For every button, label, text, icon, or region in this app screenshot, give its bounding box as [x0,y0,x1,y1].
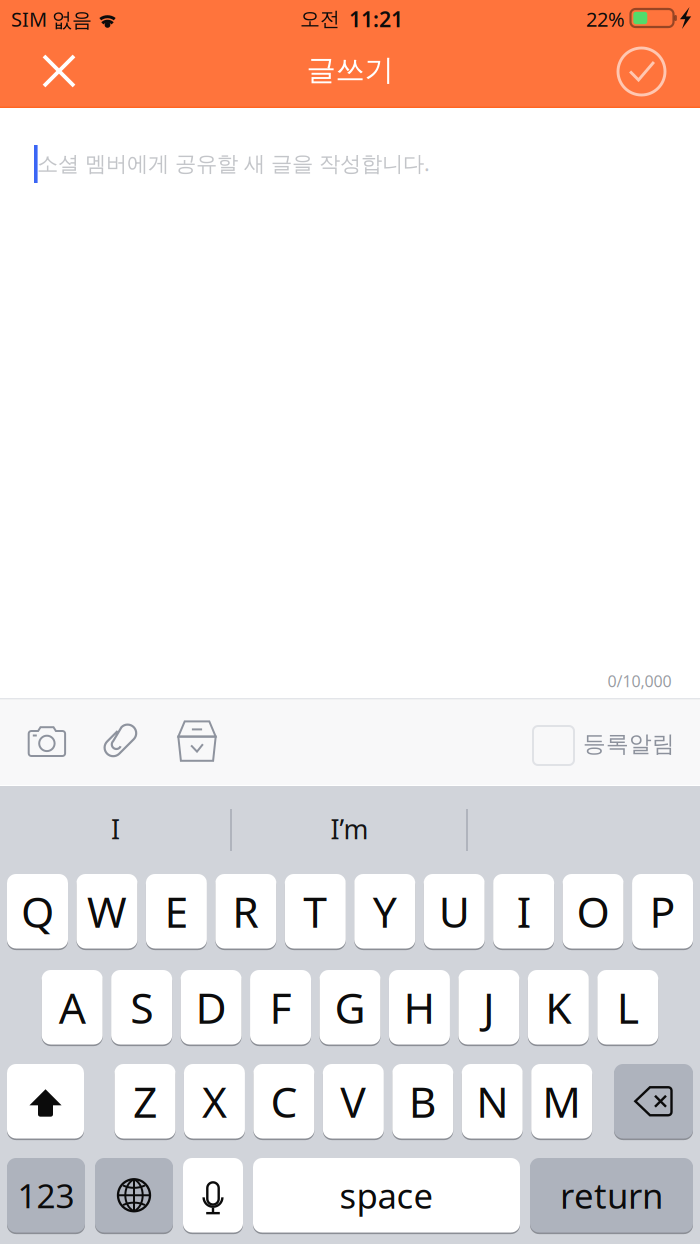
button[interactable]: L [597,970,658,1046]
button[interactable]: 123 [7,1158,85,1234]
staticText: X [202,1073,227,1130]
staticText: K [545,979,571,1036]
button[interactable]: M [531,1064,592,1140]
button[interactable]: U [424,874,485,950]
staticText: 글쓰기 [306,52,393,88]
button[interactable]: I [0,808,231,850]
button[interactable]: Archive [163,710,231,772]
button[interactable]: A [42,970,103,1046]
button[interactable]: I’m [232,808,467,850]
button[interactable]: I [493,874,554,950]
button[interactable]: X [184,1064,245,1140]
staticText: E [164,883,188,940]
button[interactable]: E [146,874,207,950]
button[interactable]: B [392,1064,453,1140]
staticText: O [577,883,610,940]
staticText: 123 [17,1173,74,1217]
staticText: SIM 없음 [11,6,92,32]
staticText: F [270,979,292,1036]
staticText: W [87,883,127,940]
staticText: V [340,1073,366,1130]
staticText: 11:21 [349,5,403,33]
button[interactable]: Camera [13,713,82,771]
button[interactable]: Shift [7,1064,84,1140]
staticText: M [542,1073,581,1130]
button[interactable]: Attach file [86,711,154,771]
staticText: I’m [330,811,368,847]
button[interactable]: Dictate [183,1158,243,1234]
staticText: I [517,883,531,940]
staticText: space [339,1172,433,1218]
staticText: I [111,811,120,847]
button[interactable]: S [111,970,172,1046]
staticText: C [270,1073,297,1130]
button[interactable]: C [253,1064,314,1140]
staticText: 0/10,000 [607,670,671,692]
staticText: N [476,1073,508,1130]
staticText: U [439,883,470,940]
staticText: H [403,979,435,1036]
staticText: 소셜 멤버에게 공유할 새 글을 작성합니다. [37,149,430,177]
button[interactable]: V [323,1064,384,1140]
staticText: Z [133,1073,157,1130]
button[interactable]: return [530,1158,693,1234]
button[interactable]: K [528,970,589,1046]
staticText: S [130,979,153,1036]
staticText: R [232,883,259,940]
staticText: G [334,979,365,1036]
button[interactable]: G [319,970,380,1046]
button[interactable]: Z [114,1064,175,1140]
staticText: 22% [586,6,625,32]
staticText: A [59,979,86,1036]
button[interactable]: space [253,1158,520,1234]
staticText: 오전 [300,7,346,31]
button[interactable]: J [458,970,519,1046]
button[interactable]: N [462,1064,523,1140]
button[interactable]: Close [10,40,110,102]
staticText: P [650,883,676,940]
staticText: D [196,979,227,1036]
staticText: return [560,1172,663,1218]
staticText: J [483,979,495,1036]
button[interactable]: 등록알림 [521,712,699,770]
button[interactable]: R [215,874,276,950]
staticText: Q [21,883,54,940]
button[interactable]: H [389,970,450,1046]
button[interactable]: F [250,970,311,1046]
button[interactable]: Done [596,40,688,102]
button[interactable]: W [76,874,137,950]
button[interactable]: T [285,874,346,950]
button[interactable]: Q [7,874,68,950]
button[interactable]: D [181,970,242,1046]
staticText: B [409,1073,437,1130]
button[interactable]: Y [354,874,415,950]
button[interactable]: Delete [614,1064,693,1140]
staticText: L [617,979,639,1036]
button[interactable]: Next keyboard [95,1158,173,1234]
staticText: Y [373,883,397,940]
staticText: 등록알림 [583,730,675,758]
staticText: T [303,883,327,940]
button[interactable]: O [563,874,624,950]
button[interactable]: P [632,874,693,950]
